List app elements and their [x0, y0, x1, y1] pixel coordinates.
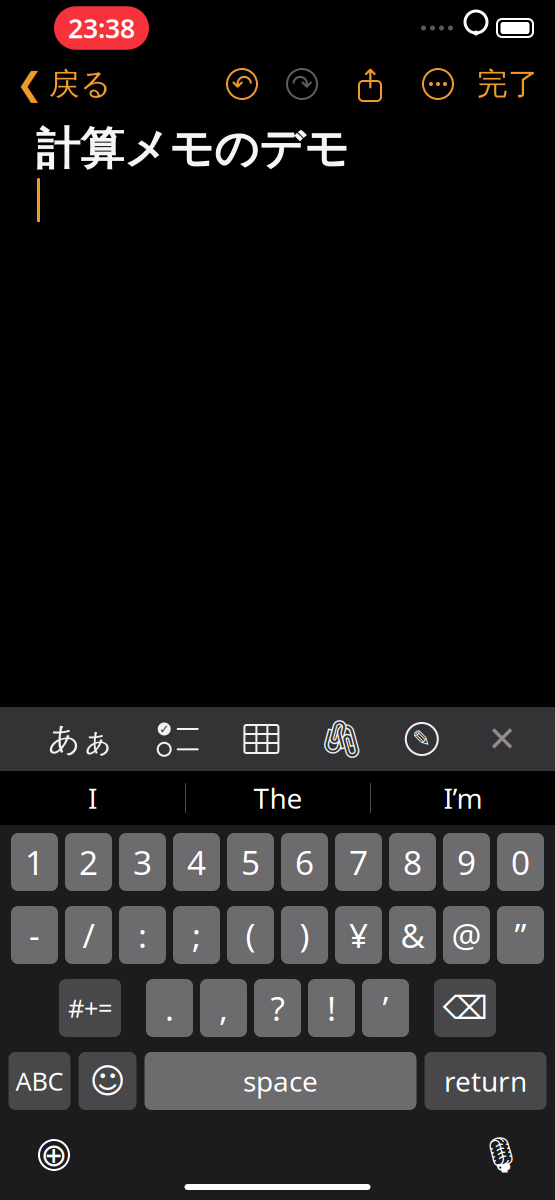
staticText: 6: [295, 840, 314, 884]
button[interactable]: space: [144, 1052, 416, 1110]
staticText: あぁ: [48, 719, 114, 759]
button[interactable]: 9: [443, 833, 490, 891]
staticText: ⊕: [40, 1137, 67, 1173]
staticText: .: [165, 986, 174, 1030]
staticText: I’m: [443, 779, 482, 817]
button[interactable]: Redo: [285, 67, 319, 101]
staticText: ↶: [231, 70, 252, 98]
button[interactable]: Close: [483, 722, 521, 756]
button[interactable]: ’: [362, 979, 409, 1037]
button[interactable]: Table: [242, 722, 280, 756]
staticText: ?: [270, 986, 284, 1030]
button[interactable]: Attach: [323, 722, 361, 756]
staticText: I: [88, 779, 97, 817]
staticText: ”: [514, 913, 526, 957]
staticText: 3: [133, 840, 152, 884]
staticText: &: [400, 913, 424, 957]
button[interactable]: Text format: [48, 719, 114, 759]
staticText: ¥: [349, 913, 368, 957]
button[interactable]: The: [186, 772, 370, 824]
button[interactable]: 1: [11, 833, 58, 891]
staticText: ❮: [16, 66, 43, 102]
button[interactable]: 4: [173, 833, 220, 891]
staticText: ✕: [487, 719, 516, 759]
staticText: ☺: [89, 1061, 125, 1101]
button[interactable]: ,: [200, 979, 247, 1037]
button[interactable]: ;: [173, 906, 220, 964]
button[interactable]: 7: [335, 833, 382, 891]
button[interactable]: Delete: [434, 979, 496, 1037]
staticText: 完了: [477, 65, 539, 103]
staticText: ↑: [359, 64, 381, 94]
button[interactable]: 6: [281, 833, 328, 891]
staticText: ⌫: [442, 990, 487, 1026]
staticText: 戻る: [49, 65, 111, 103]
staticText: 2: [79, 840, 98, 884]
button[interactable]: ”: [497, 906, 544, 964]
button[interactable]: Dictation: [477, 1131, 525, 1179]
button[interactable]: @: [443, 906, 490, 964]
button[interactable]: Undo: [225, 67, 259, 101]
button[interactable]: 8: [389, 833, 436, 891]
button[interactable]: .: [146, 979, 193, 1037]
staticText: 23:38: [68, 10, 135, 46]
button[interactable]: Markup: [403, 722, 441, 756]
staticText: /: [82, 913, 94, 957]
staticText: ↷: [291, 70, 312, 98]
button[interactable]: ?: [254, 979, 301, 1037]
button[interactable]: ABC: [8, 1052, 70, 1110]
button[interactable]: Share: [353, 66, 387, 102]
staticText: 7: [349, 840, 368, 884]
button[interactable]: -: [11, 906, 58, 964]
staticText: -: [29, 913, 40, 957]
button[interactable]: return: [424, 1052, 546, 1110]
staticText: ’: [382, 986, 388, 1030]
staticText: 8: [403, 840, 422, 884]
staticText: (: [245, 913, 255, 957]
staticText: ,: [219, 986, 228, 1030]
button[interactable]: !: [308, 979, 355, 1037]
staticText: 4: [187, 840, 206, 884]
button[interactable]: Checklist: [156, 722, 200, 756]
staticText: !: [327, 986, 336, 1030]
button[interactable]: #+=: [59, 979, 121, 1037]
button[interactable]: I: [0, 772, 185, 824]
button[interactable]: ❮: [0, 57, 111, 111]
staticText: :: [138, 913, 147, 957]
button[interactable]: 5: [227, 833, 274, 891]
staticText: 9: [457, 840, 476, 884]
staticText: ;: [192, 913, 201, 957]
staticText: ✎: [412, 726, 431, 752]
button[interactable]: Emoji: [78, 1052, 136, 1110]
staticText: The: [253, 779, 302, 817]
button[interactable]: :: [119, 906, 166, 964]
button[interactable]: 2: [65, 833, 112, 891]
button[interactable]: 0: [497, 833, 544, 891]
staticText: 🖇: [318, 718, 365, 760]
staticText: 1: [25, 840, 44, 884]
staticText: ✓: [159, 722, 169, 736]
staticText: 0: [511, 840, 530, 884]
staticText: 🎙: [479, 1135, 523, 1175]
button[interactable]: &: [389, 906, 436, 964]
button[interactable]: ): [281, 906, 328, 964]
button[interactable]: ¥: [335, 906, 382, 964]
button[interactable]: 3: [119, 833, 166, 891]
button[interactable]: I’m: [371, 772, 555, 824]
staticText: space: [243, 1062, 318, 1100]
staticText: return: [444, 1062, 527, 1100]
button[interactable]: More: [421, 67, 455, 101]
button[interactable]: 完了: [477, 57, 555, 111]
staticText: 5: [241, 840, 260, 884]
staticText: @: [451, 913, 481, 957]
button[interactable]: (: [227, 906, 274, 964]
staticText: ): [299, 913, 309, 957]
staticText: 計算メモのデモ: [36, 122, 349, 176]
staticText: ABC: [15, 1064, 63, 1098]
staticText: #+=: [68, 991, 112, 1025]
button[interactable]: /: [65, 906, 112, 964]
button[interactable]: Next keyboard: [30, 1131, 78, 1179]
